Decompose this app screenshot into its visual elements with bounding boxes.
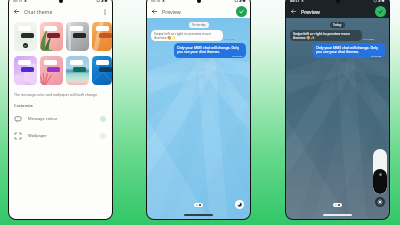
button[interactable]: [40, 22, 63, 51]
button[interactable]: [92, 22, 112, 51]
button[interactable]: Brightness settings: [375, 197, 385, 207]
staticText: 00:16: [151, 0, 161, 3]
staticText: 00:17: [290, 0, 300, 3]
staticText: Wallpaper: [28, 133, 48, 138]
staticText: Chat theme: [24, 8, 53, 15]
staticText: Swipe left or right to preview more them…: [293, 31, 359, 40]
staticText: 00:15: [13, 0, 23, 3]
staticText: Preview: [301, 8, 320, 15]
button[interactable]: [40, 56, 63, 85]
button[interactable]: Page indicator: [194, 203, 203, 207]
staticText: 10:15 am: [224, 37, 235, 40]
button[interactable]: Message colour: [9, 110, 112, 127]
button[interactable]: [92, 56, 112, 85]
button[interactable]: [66, 22, 89, 51]
staticText: Today: [333, 23, 342, 27]
staticText: Swipe left or right to preview more them…: [154, 31, 220, 40]
button[interactable]: Back: [12, 7, 21, 16]
staticText: Preview: [162, 8, 181, 15]
staticText: 10:15 am: [363, 37, 374, 40]
button[interactable]: Apply theme: [236, 6, 247, 17]
button[interactable]: Brightness: [373, 149, 387, 194]
staticText: Only your MMS chat will change. Only you…: [316, 45, 382, 54]
button[interactable]: [14, 56, 37, 85]
button[interactable]: Back: [289, 7, 298, 16]
button[interactable]: Back: [150, 7, 159, 16]
button[interactable]: Page indicator: [333, 203, 342, 207]
button[interactable]: [14, 22, 37, 51]
staticText: 10:16 am: [232, 54, 243, 57]
staticText: Only your MMS chat will change. Only you…: [177, 45, 243, 54]
staticText: Message colour: [28, 116, 58, 121]
staticText: The message color and wallpaper will bot…: [14, 92, 98, 97]
staticText: Yesterday: [192, 23, 206, 27]
button[interactable]: Apply theme: [375, 6, 386, 17]
staticText: 10:16 am: [371, 54, 382, 57]
button[interactable]: Toggle dark theme: [235, 200, 244, 209]
button[interactable]: Wallpaper: [9, 127, 112, 144]
button[interactable]: [66, 56, 89, 85]
staticText: Customize: [14, 103, 34, 108]
button[interactable]: More options: [100, 7, 109, 16]
